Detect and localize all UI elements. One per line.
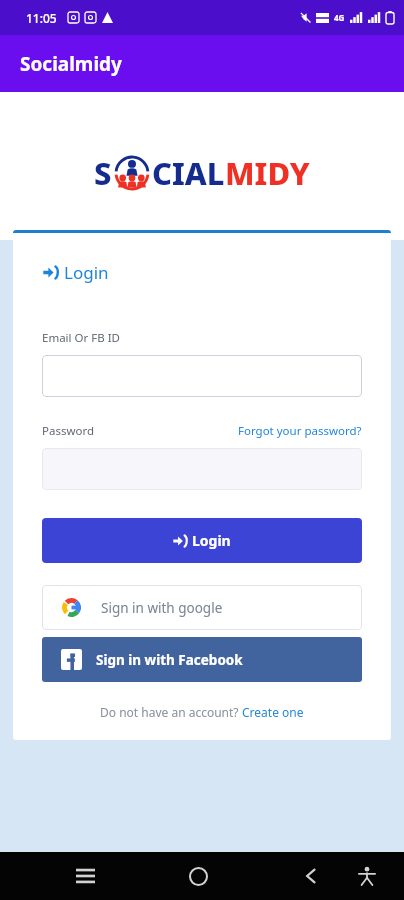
button[interactable] — [42, 448, 362, 490]
staticText: Do not have an account? — [100, 704, 242, 720]
staticText: Sign in with Facebook — [96, 651, 243, 669]
button[interactable]: Home — [175, 853, 221, 899]
button[interactable]: Menu — [62, 853, 108, 899]
button[interactable] — [42, 355, 362, 397]
button[interactable]: Accessibility — [344, 853, 390, 899]
staticText: Email Or FB ID — [42, 330, 120, 346]
button[interactable]: Sign in with google — [42, 585, 362, 630]
staticText: Create one — [242, 704, 304, 720]
staticText: Login — [64, 261, 109, 284]
staticText: Sign in with google — [101, 599, 223, 617]
staticText: CIAL — [152, 152, 225, 194]
staticText: MIDY — [225, 152, 310, 194]
button[interactable]: Forgot your password? — [238, 423, 362, 439]
staticText: Socialmidy — [20, 51, 122, 77]
staticText: Forgot your password? — [238, 423, 362, 439]
staticText: 4G — [334, 12, 345, 23]
button[interactable]: Sign in with Facebook — [42, 637, 362, 682]
button[interactable]: Back — [288, 853, 334, 899]
staticText: S — [94, 152, 112, 194]
staticText: 11:05 — [26, 10, 57, 26]
button[interactable]: Login — [42, 518, 362, 563]
button[interactable]: Create one — [242, 704, 304, 720]
staticText: Password — [42, 423, 95, 439]
staticText: Login — [192, 531, 231, 550]
